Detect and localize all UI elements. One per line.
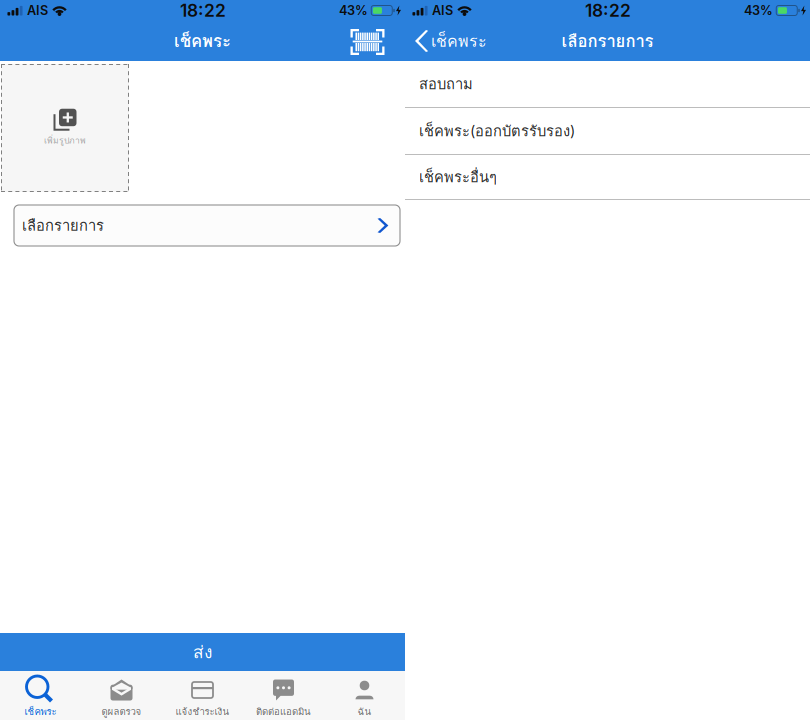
- button[interactable]: Add photo: [1, 64, 129, 192]
- staticText: สอบถาม: [419, 72, 473, 96]
- button[interactable]: เช็คพระอื่นๆ: [405, 155, 810, 199]
- staticText: เช็คพระ: [174, 28, 231, 54]
- staticText: เลือกรายการ: [22, 214, 104, 237]
- button[interactable]: แจ้งชำระเงิน: [162, 671, 243, 720]
- button[interactable]: Scan barcode: [345, 21, 405, 61]
- staticText: เพิ่มรูปภาพ: [44, 134, 86, 147]
- button[interactable]: ส่ง: [0, 633, 405, 671]
- staticText: 18:22: [180, 0, 226, 21]
- staticText: แจ้งชำระเงิน: [175, 704, 229, 719]
- button[interactable]: เลือกรายการ: [14, 205, 400, 246]
- staticText: ส่ง: [193, 638, 212, 666]
- staticText: เช็คพระอื่นๆ: [419, 165, 497, 189]
- staticText: ฉัน: [357, 704, 371, 719]
- staticText: เช็คพระ: [431, 28, 487, 54]
- button[interactable]: เช็คพระ: [405, 21, 487, 61]
- staticText: เช็คพระ(ออกบัตรรับรอง): [419, 119, 575, 143]
- staticText: ดูผลตรวจ: [101, 704, 141, 719]
- staticText: 43%: [339, 3, 368, 18]
- staticText: เช็คพระ: [24, 704, 56, 719]
- button[interactable]: เช็คพระ(ออกบัตรรับรอง): [405, 108, 810, 154]
- staticText: 18:22: [585, 0, 631, 21]
- staticText: เลือกรายการ: [561, 28, 653, 54]
- button[interactable]: ดูผลตรวจ: [81, 671, 162, 720]
- staticText: 43%: [744, 3, 773, 18]
- button[interactable]: เช็คพระ: [0, 671, 81, 720]
- staticText: ติดต่อแอดมิน: [256, 704, 311, 719]
- button[interactable]: ติดต่อแอดมิน: [243, 671, 324, 720]
- staticText: AIS: [27, 3, 48, 18]
- staticText: AIS: [432, 3, 453, 18]
- button[interactable]: สอบถาม: [405, 61, 810, 107]
- button[interactable]: ฉัน: [324, 671, 405, 720]
